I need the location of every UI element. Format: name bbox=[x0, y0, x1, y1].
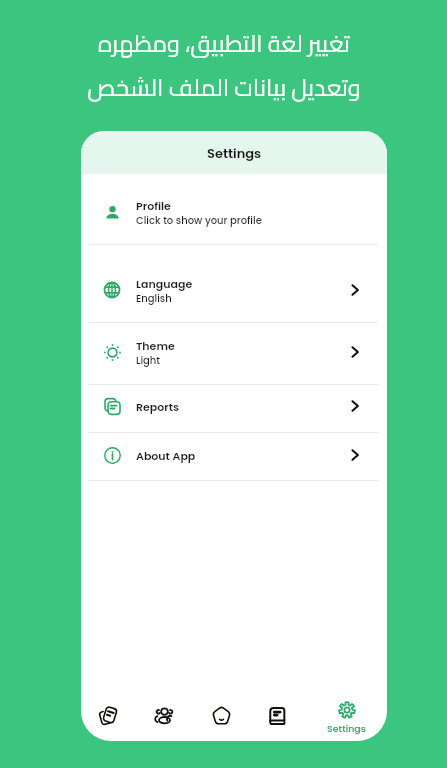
button[interactable]: Theme bbox=[81, 322, 387, 384]
button[interactable]: Reports bbox=[81, 384, 387, 432]
button[interactable]: Home bbox=[212, 706, 231, 741]
staticText: Profile bbox=[136, 198, 171, 213]
button[interactable]: Language bbox=[81, 244, 387, 322]
staticText: Settings bbox=[327, 722, 366, 735]
staticText: English bbox=[136, 291, 172, 305]
button[interactable]: Cards bbox=[99, 706, 118, 741]
staticText: Light bbox=[136, 353, 161, 367]
staticText: Settings bbox=[207, 144, 262, 162]
staticText: تغيير لغة التطبيق، ومظهره bbox=[98, 21, 350, 65]
staticText: About App bbox=[136, 448, 196, 463]
button[interactable]: Settings bbox=[324, 701, 369, 735]
button[interactable]: Notes bbox=[268, 706, 287, 741]
staticText: Click to show your profile bbox=[136, 213, 262, 227]
staticText: وتعديل بيانات الملف الشخص bbox=[87, 65, 361, 109]
button[interactable]: Profile bbox=[81, 174, 387, 244]
staticText: Theme bbox=[136, 338, 175, 353]
button[interactable]: About App bbox=[81, 432, 387, 480]
staticText: Language bbox=[136, 276, 193, 291]
button[interactable]: Groups bbox=[155, 706, 174, 741]
staticText: Reports bbox=[136, 399, 180, 414]
